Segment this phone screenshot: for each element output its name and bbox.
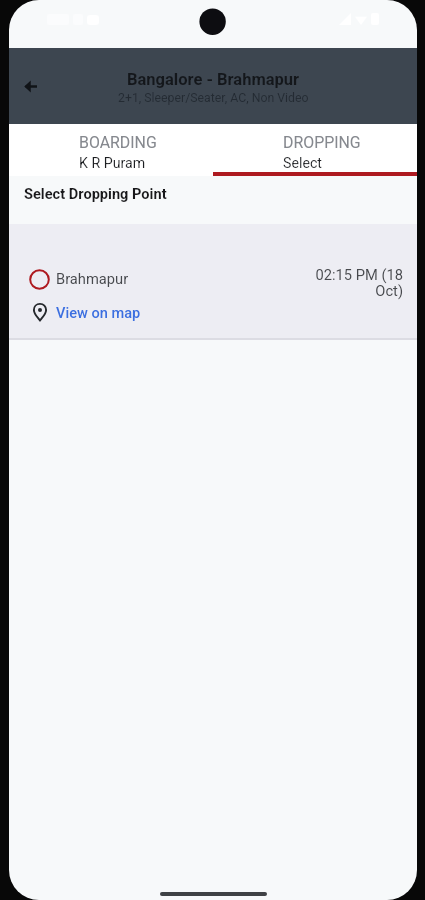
staticText: Bangalore - Brahmapur <box>127 70 300 89</box>
staticText: 02:15 PM (18 Oct) <box>303 266 403 299</box>
button[interactable]: View on map <box>33 303 145 321</box>
staticText: Select Dropping Point <box>24 185 167 202</box>
staticText: Brahmapur <box>56 270 129 287</box>
staticText: DROPPING <box>283 133 361 152</box>
staticText: BOARDING <box>79 133 157 152</box>
button[interactable]: BOARDING <box>9 124 213 163</box>
staticText: Select <box>283 155 322 172</box>
staticText: View on map <box>56 304 141 321</box>
staticText: 2+1, Sleeper/Seater, AC, Non Video <box>118 91 309 105</box>
staticText: K R Puram <box>79 155 146 172</box>
button[interactable]: DROPPING <box>213 124 417 163</box>
button[interactable]: Brahmapur <box>9 224 417 338</box>
button[interactable]: Back <box>10 66 50 106</box>
